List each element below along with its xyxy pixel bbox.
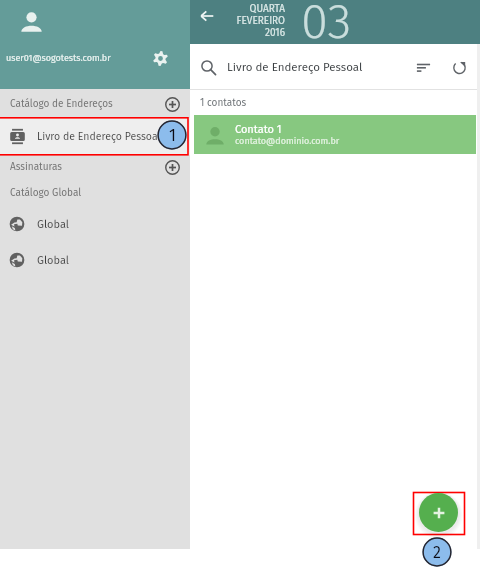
button[interactable]: Contato 1	[194, 115, 476, 154]
button[interactable]: Add	[159, 91, 185, 117]
staticText: 1 contatos	[200, 97, 247, 109]
button[interactable]: Assinaturas	[0, 155, 190, 179]
staticText: Catálogo Global	[10, 187, 82, 199]
button[interactable]: Catálogo de Endereços	[0, 89, 190, 118]
button[interactable]: Refresh	[445, 53, 473, 81]
staticText: Global	[37, 254, 70, 267]
button[interactable]: Add contact	[419, 493, 458, 532]
staticText: Livro de Endereço Pessoal	[227, 60, 433, 74]
staticText: Contato 1	[235, 123, 282, 136]
staticText: contato@dominio.com.br	[235, 136, 340, 147]
button[interactable]: Back	[190, 0, 222, 32]
button[interactable]: Add	[159, 155, 185, 179]
button[interactable]: Sort	[409, 53, 437, 81]
button[interactable]: Livro de Endereço Pessoal	[0, 118, 190, 155]
staticText: 2	[433, 543, 441, 562]
button[interactable]: Search	[190, 44, 480, 89]
staticText: user01@sogotests.com.br	[6, 53, 111, 64]
staticText: 2016	[265, 27, 285, 39]
staticText: QUARTA	[249, 3, 285, 15]
staticText: 1	[169, 126, 176, 145]
button[interactable]: Global	[0, 206, 190, 242]
staticText: Livro de Endereço Pessoal	[37, 130, 161, 143]
button[interactable]: Settings	[148, 46, 173, 71]
button[interactable]: Global	[0, 242, 190, 278]
button[interactable]: user01@sogotests.com.br	[0, 0, 190, 89]
staticText: Catálogo de Endereços	[10, 98, 174, 110]
button[interactable]: Search	[194, 53, 222, 81]
staticText: 03	[301, 0, 352, 51]
staticText: Assinaturas	[10, 161, 174, 173]
staticText: Global	[37, 218, 70, 231]
staticText: FEVEREIRO	[236, 15, 285, 27]
